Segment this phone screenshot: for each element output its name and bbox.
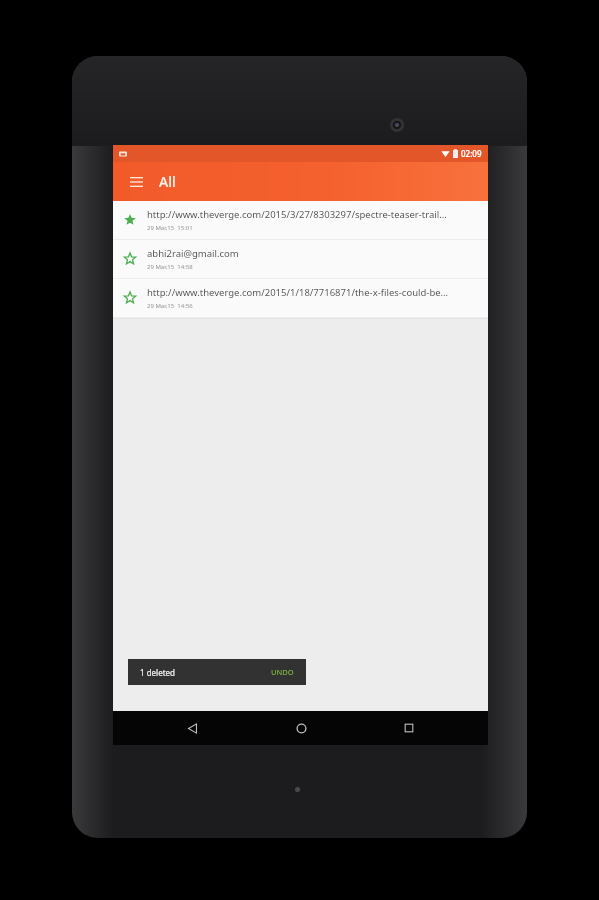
button[interactable]: Unstar <box>113 201 147 239</box>
button[interactable]: UNDO <box>271 667 294 677</box>
staticText: 29 Mar,15 14:58 <box>147 263 193 271</box>
staticText: 29 Mar,15 14:56 <box>147 302 193 310</box>
staticText: 29 Mar,15 15:01 <box>147 224 193 232</box>
staticText: 1 deleted <box>140 667 175 678</box>
button[interactable]: Recent apps <box>379 711 439 745</box>
button[interactable]: Unstar <box>113 201 488 240</box>
button[interactable]: Star <box>113 240 147 278</box>
button[interactable]: Open navigation drawer <box>123 169 149 195</box>
staticText: http://www.theverge.com/2015/1/18/771687… <box>147 286 449 299</box>
button[interactable]: Back <box>162 711 222 745</box>
button[interactable]: Star <box>113 279 488 318</box>
button[interactable]: 1 deleted <box>128 659 306 685</box>
staticText: abhi2rai@gmail.com <box>147 247 239 260</box>
staticText: 02:09 <box>461 148 482 159</box>
button[interactable]: Home <box>271 711 331 745</box>
staticText: http://www.theverge.com/2015/3/27/830329… <box>147 208 447 221</box>
button[interactable]: Star <box>113 240 488 279</box>
button[interactable]: Star <box>113 279 147 317</box>
button[interactable]: All <box>159 172 176 191</box>
